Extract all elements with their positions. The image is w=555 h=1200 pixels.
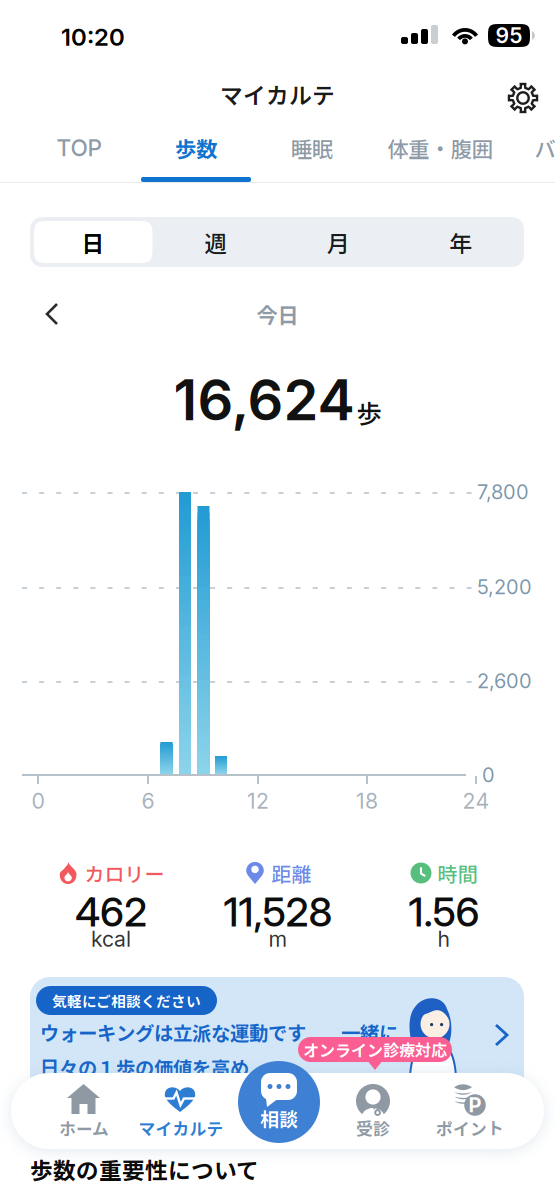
button[interactable]: 体重・腹囲	[385, 124, 495, 184]
staticText: 時間	[437, 858, 477, 887]
staticText: 24	[462, 788, 489, 814]
staticText: 6	[141, 788, 154, 814]
staticText: マイカルテ	[220, 78, 335, 110]
staticText: 16,624	[173, 366, 354, 434]
button[interactable]: 前の日	[32, 290, 80, 338]
staticText: 462	[75, 888, 147, 936]
staticText: m	[268, 926, 287, 952]
staticText: 1.56	[408, 888, 479, 936]
staticText: 2,600	[477, 669, 532, 693]
button[interactable]: 月	[279, 221, 397, 263]
staticText: 日々の１歩の価値を高め	[40, 1053, 249, 1081]
button[interactable]: 気軽にご相談ください	[30, 977, 524, 1117]
button[interactable]: 受診	[325, 1073, 421, 1149]
staticText: 歩数の重要性について	[30, 1153, 259, 1185]
staticText: 11,528	[223, 888, 332, 936]
button[interactable]: TOP	[33, 124, 125, 184]
staticText: kcal	[91, 926, 131, 952]
staticText: 週	[204, 226, 227, 258]
button[interactable]: 設定	[500, 75, 546, 121]
staticText: 0	[482, 763, 495, 787]
staticText: P	[468, 1093, 481, 1117]
button[interactable]: 歩数	[152, 124, 240, 184]
staticText: 95	[495, 23, 522, 48]
staticText: 0	[31, 788, 44, 814]
staticText: マイカルテ	[138, 1116, 223, 1140]
staticText: カロリー	[84, 858, 164, 887]
button[interactable]: バ	[525, 124, 555, 184]
staticText: 睡眠	[291, 133, 333, 163]
staticText: ホーム	[59, 1116, 109, 1140]
button[interactable]: 週	[156, 221, 275, 263]
staticText: 日	[82, 226, 105, 258]
button[interactable]: マイカルテ	[133, 1073, 229, 1149]
staticText: ポイント	[436, 1116, 504, 1140]
staticText: TOP	[56, 134, 101, 162]
staticText: 今日	[256, 299, 298, 329]
staticText: 10:20	[61, 22, 125, 51]
button[interactable]: P	[422, 1073, 518, 1149]
staticText: 月	[327, 226, 350, 258]
staticText: 相談	[260, 1104, 298, 1131]
staticText: 距離	[271, 858, 311, 887]
button[interactable]: 日	[34, 221, 152, 263]
staticText: オンライン診療対応	[303, 1038, 447, 1061]
button[interactable]: 年	[401, 221, 520, 263]
button[interactable]: 睡眠	[268, 124, 356, 184]
button[interactable]: 相談	[238, 1061, 320, 1143]
staticText: バ	[534, 133, 555, 163]
staticText: 受診	[356, 1116, 390, 1140]
staticText: 一緒に	[341, 1018, 398, 1046]
staticText: 18	[356, 788, 378, 814]
staticText: 歩数	[175, 133, 217, 163]
staticText: 12	[247, 788, 269, 814]
staticText: 年	[449, 226, 472, 258]
staticText: ウォーキングは立派な運動です	[40, 1018, 306, 1046]
staticText: 7,800	[477, 480, 529, 504]
staticText: 体重・腹囲	[387, 133, 492, 163]
staticText: h	[437, 926, 450, 952]
staticText: 気軽にご相談ください	[52, 990, 201, 1011]
button[interactable]: ホーム	[36, 1073, 132, 1149]
staticText: 5,200	[477, 575, 532, 599]
staticText: 歩	[356, 394, 381, 431]
